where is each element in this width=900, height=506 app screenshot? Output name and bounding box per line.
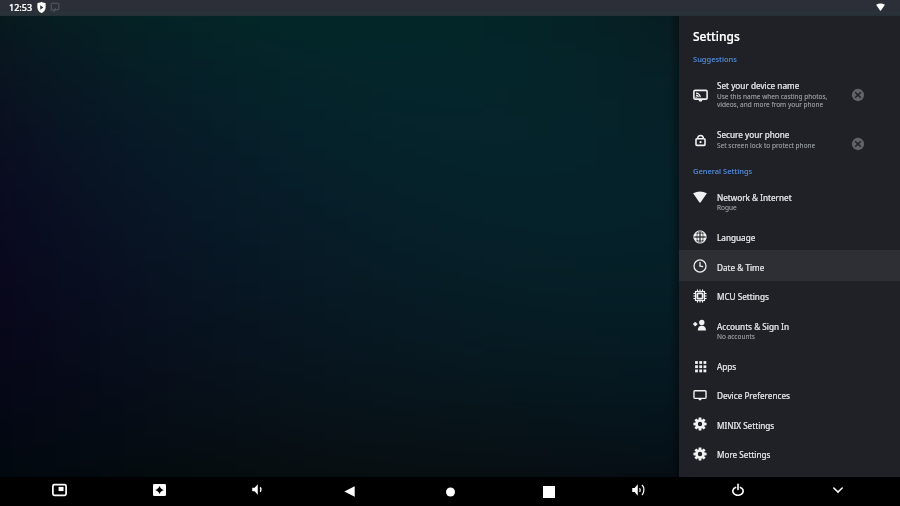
button[interactable]: Fullscreen <box>143 475 175 504</box>
staticText: Accounts & Sign In <box>717 321 789 332</box>
staticText: General Settings <box>693 166 753 176</box>
button[interactable] <box>679 284 900 314</box>
staticText: Rogue <box>717 203 737 212</box>
staticText: Secure your phone <box>717 129 790 140</box>
staticText: Device Preferences <box>717 390 790 401</box>
staticText: 12:53 <box>9 1 33 13</box>
staticText: Network & Internet <box>717 192 792 203</box>
button[interactable]: Home <box>434 477 466 506</box>
button[interactable]: Dismiss suggestion <box>846 83 870 107</box>
button[interactable]: Volume up <box>622 475 654 504</box>
button[interactable] <box>679 185 900 225</box>
button[interactable]: Power <box>722 475 754 504</box>
button[interactable] <box>679 383 900 413</box>
button[interactable] <box>679 125 900 159</box>
staticText: More Settings <box>717 449 771 460</box>
button[interactable]: Back <box>333 477 365 506</box>
button[interactable] <box>679 76 900 120</box>
staticText: Set screen lock to protect phone <box>717 141 816 150</box>
button[interactable]: Recent apps <box>533 477 565 506</box>
button[interactable] <box>679 413 900 443</box>
staticText: MINIX Settings <box>717 420 775 431</box>
button[interactable] <box>679 225 900 255</box>
staticText: Language <box>717 232 756 243</box>
staticText: No accounts <box>717 332 755 341</box>
button[interactable]: Picture in picture <box>43 475 75 504</box>
staticText: Date & Time <box>717 262 765 273</box>
button[interactable]: Hide navigation bar <box>822 475 854 504</box>
staticText: MCU Settings <box>717 291 769 302</box>
button[interactable] <box>679 314 900 354</box>
button[interactable]: Volume down <box>242 475 274 504</box>
button[interactable] <box>679 354 900 384</box>
staticText: Suggestions <box>693 54 737 64</box>
staticText: Apps <box>717 361 737 372</box>
button[interactable] <box>679 255 900 285</box>
staticText: Set your device name <box>717 80 800 91</box>
button[interactable] <box>679 442 900 472</box>
staticText: videos, and more from your phone <box>717 100 824 109</box>
staticText: Settings <box>693 28 740 44</box>
staticText: Use this name when casting photos, <box>717 92 828 101</box>
button[interactable]: Dismiss suggestion <box>846 132 870 156</box>
